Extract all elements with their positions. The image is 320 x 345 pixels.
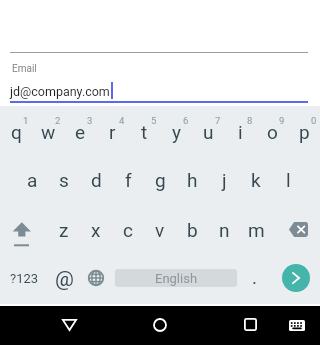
button[interactable]: x [80,205,112,255]
staticText: f [125,169,132,191]
staticText: b [187,219,198,241]
staticText: . [252,266,258,288]
staticText: @ [55,267,74,292]
staticText: 4 [119,115,125,126]
button[interactable]: Backspace [276,206,320,256]
button[interactable]: b [176,205,208,255]
staticText: c [123,219,133,241]
button[interactable]: j [208,155,240,205]
staticText: x [91,219,101,241]
staticText: 9 [279,115,285,126]
button[interactable]: g [144,155,176,205]
staticText: 1 [23,115,29,126]
button[interactable]: m [240,205,272,255]
staticText: k [251,169,261,191]
staticText: l [286,169,291,191]
button[interactable]: Home [140,306,180,345]
button[interactable]: 4 [96,106,128,156]
staticText: j [222,169,227,191]
button[interactable]: Switch keyboard [277,306,317,345]
staticText: Email [12,63,37,75]
staticText: t [141,121,148,143]
button[interactable]: ?123 [0,253,49,303]
staticText: i [238,121,243,143]
staticText: a [27,169,38,191]
staticText: 8 [247,115,253,126]
staticText: y [172,121,181,143]
button[interactable]: a [16,155,48,205]
button[interactable]: Back [49,306,89,345]
button[interactable]: . [240,253,270,303]
staticText: p [299,121,310,143]
button[interactable]: Change language [80,253,112,303]
staticText: 2 [55,115,61,126]
button[interactable]: 0 [288,106,320,156]
staticText: 7 [215,115,221,126]
staticText: u [203,121,214,143]
button[interactable]: l [272,155,304,205]
button[interactable]: s [48,155,80,205]
staticText: 0 [311,115,317,126]
staticText: jd@company.com [10,84,110,99]
button[interactable]: English [112,253,240,303]
staticText: o [267,121,278,143]
button[interactable]: 8 [224,106,256,156]
staticText: m [248,219,265,241]
staticText: q [11,121,22,143]
button[interactable]: h [176,155,208,205]
button[interactable]: @ [49,253,80,303]
button[interactable]: Shift [0,206,44,256]
button[interactable]: d [80,155,112,205]
staticText: e [75,121,86,143]
staticText: s [59,169,69,191]
button[interactable]: c [112,205,144,255]
staticText: d [91,169,102,191]
button[interactable]: 3 [64,106,96,156]
staticText: v [155,219,165,241]
button[interactable]: z [48,205,80,255]
button[interactable]: 5 [128,106,160,156]
button[interactable]: 9 [256,106,288,156]
staticText: z [59,219,69,241]
staticText: 6 [183,115,189,126]
button[interactable]: f [112,155,144,205]
button[interactable]: 2 [32,106,64,156]
button[interactable]: Enter [270,253,320,303]
staticText: w [41,121,56,143]
staticText: h [187,169,198,191]
staticText: ?123 [10,271,39,286]
staticText: 5 [151,115,157,126]
button[interactable]: k [240,155,272,205]
button[interactable]: 6 [160,106,192,156]
button[interactable]: v [144,205,176,255]
staticText: 3 [87,115,93,126]
staticText: g [155,169,166,191]
button[interactable]: 7 [192,106,224,156]
staticText: r [109,121,116,143]
staticText: English [155,271,198,286]
button[interactable]: n [208,205,240,255]
button[interactable]: Recent apps [230,306,270,345]
staticText: n [219,219,230,241]
button[interactable]: 1 [0,106,32,156]
